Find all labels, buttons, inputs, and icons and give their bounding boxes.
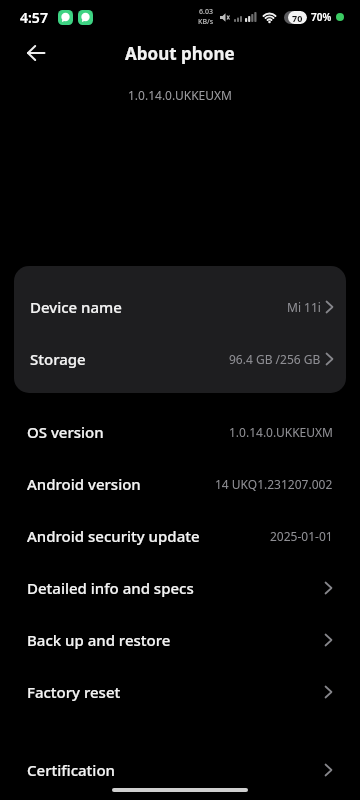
button[interactable]: Android security update: [0, 510, 360, 562]
staticText: Back up and restore: [27, 630, 171, 650]
button[interactable]: Factory reset: [0, 666, 360, 718]
staticText: 4:57: [20, 8, 48, 27]
staticText: 14 UKQ1.231207.002: [215, 476, 333, 492]
staticText: Android version: [27, 474, 141, 494]
staticText: Storage: [30, 349, 86, 369]
button[interactable]: Device name: [14, 281, 346, 333]
staticText: Factory reset: [27, 682, 121, 702]
staticText: Device name: [30, 297, 122, 317]
staticText: 1.0.14.0.UKKEUXM: [229, 424, 333, 440]
staticText: Android security update: [27, 526, 200, 546]
staticText: 2025-01-01: [270, 528, 333, 544]
staticText: 6.03: [199, 7, 213, 17]
staticText: Mi 11i: [287, 299, 321, 315]
button[interactable]: OS version: [0, 406, 360, 458]
staticText: About phone: [125, 42, 235, 65]
staticText: OS version: [27, 422, 104, 442]
button[interactable]: Android version: [0, 458, 360, 510]
staticText: 70: [292, 12, 303, 24]
staticText: 70%: [311, 10, 332, 24]
staticText: 1.0.14.0.UKKEUXM: [128, 87, 232, 103]
button[interactable]: Detailed info and specs: [0, 562, 360, 614]
staticText: 96.4 GB /256 GB: [229, 351, 321, 367]
button[interactable]: Storage: [14, 333, 346, 385]
button[interactable]: [26, 45, 46, 61]
button[interactable]: Back up and restore: [0, 614, 360, 666]
button[interactable]: Certification: [0, 744, 360, 796]
staticText: Certification: [27, 760, 115, 780]
staticText: Detailed info and specs: [27, 578, 194, 598]
staticText: KB/s: [198, 17, 214, 27]
